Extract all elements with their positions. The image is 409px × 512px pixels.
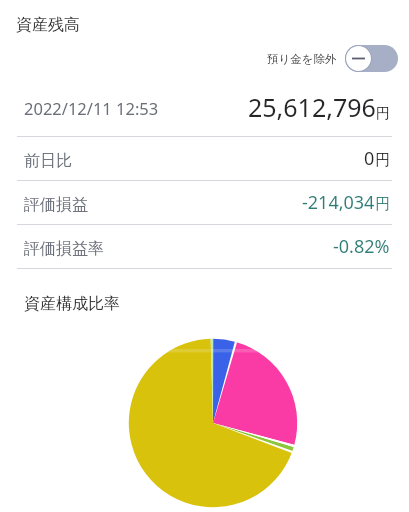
staticText: 25,612,796 xyxy=(248,90,376,124)
button[interactable]: 2022/12/11 12:53 xyxy=(0,81,409,137)
button[interactable]: 前日比 xyxy=(0,137,409,181)
staticText: 評価損益率 xyxy=(24,239,104,259)
button[interactable]: 評価損益 xyxy=(0,181,409,225)
staticText: 評価損益 xyxy=(24,195,88,215)
staticText: 0 xyxy=(364,146,375,171)
staticText: -0.82% xyxy=(333,234,390,259)
staticText: 円 xyxy=(376,105,390,123)
button[interactable]: 評価損益率 xyxy=(0,225,409,269)
staticText: 資産構成比率 xyxy=(24,294,120,314)
button[interactable]: 預り金を除外 toggle xyxy=(345,45,398,72)
staticText: 2022/12/11 12:53 xyxy=(24,97,159,119)
staticText: -214,034 xyxy=(302,190,375,215)
staticText: 円 xyxy=(375,195,390,214)
staticText: 預り金を除外 xyxy=(267,52,337,66)
staticText: 資産残高 xyxy=(16,15,80,35)
staticText: 前日比 xyxy=(24,151,72,171)
staticText: 円 xyxy=(375,151,390,170)
